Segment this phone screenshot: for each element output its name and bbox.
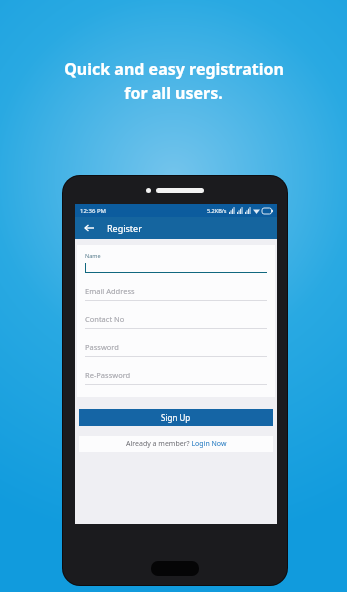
staticText: Quick and easy registration (64, 58, 284, 80)
button[interactable]: Re-Password (85, 370, 267, 385)
button[interactable]: Sign Up (79, 409, 273, 426)
button[interactable]: Contact No (85, 314, 267, 329)
button[interactable]: Password (85, 342, 267, 357)
staticText: for all users. (124, 82, 223, 104)
staticText: Re-Password (85, 370, 131, 380)
staticText: 5.2KB/s (207, 207, 227, 214)
button[interactable]: Already a member? Login Now (79, 436, 273, 452)
button[interactable]: Back (81, 220, 97, 236)
staticText: Register (107, 222, 142, 234)
staticText: Already a member? Login Now (126, 439, 227, 449)
staticText: Contact No (85, 314, 125, 324)
staticText: Email Address (85, 286, 135, 296)
staticText: Name (85, 252, 101, 259)
button[interactable]: Name (85, 252, 267, 273)
staticText: Sign Up (161, 412, 191, 423)
staticText: 12:36 PM (80, 207, 106, 215)
button[interactable]: Email Address (85, 286, 267, 301)
staticText: Password (85, 342, 119, 352)
